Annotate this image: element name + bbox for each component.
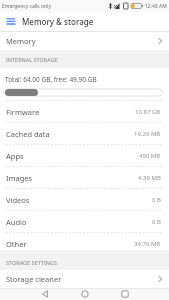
staticText: 10.87 GB [135,108,161,116]
staticText: Images [6,173,33,183]
button[interactable]: Audio [0,211,169,233]
staticText: Storage cleaner [6,274,62,284]
staticText: Memory [6,36,36,46]
staticText: Cached data [6,129,50,139]
button[interactable]: Apps [0,145,169,167]
staticText: 450 MB [139,152,161,160]
staticText: Audio [6,217,27,227]
button[interactable]: Firmware [0,101,169,123]
button[interactable] [81,290,89,298]
staticText: 0 B [152,218,161,226]
staticText: 0 B [152,196,161,204]
staticText: 4.39 MB [138,174,161,182]
staticText: Other [6,239,27,249]
button[interactable]: Cached data [0,123,169,145]
button[interactable]: Other [0,233,169,250]
button[interactable]: Images [0,167,169,189]
staticText: Apps [6,151,24,161]
button[interactable] [7,18,15,25]
staticText: 34.79 MB [134,240,161,248]
button[interactable]: Memory [0,32,169,50]
staticText: Emergency calls only [2,3,51,10]
staticText: STORAGE SETTINGS [6,259,57,266]
staticText: Videos [6,195,30,205]
staticText: INTERNAL STORAGE [6,56,58,63]
button[interactable]: Storage cleaner [0,270,169,288]
staticText: 19.29 MB [134,130,161,138]
button[interactable] [121,290,129,298]
button[interactable] [41,290,49,298]
staticText: Memory & storage [22,16,94,27]
staticText: 12:48 AM [145,3,167,10]
staticText: Total: 64.00 GB, free: 49.90 GB [5,75,97,84]
staticText: Firmware [6,107,40,117]
button[interactable]: Videos [0,189,169,211]
